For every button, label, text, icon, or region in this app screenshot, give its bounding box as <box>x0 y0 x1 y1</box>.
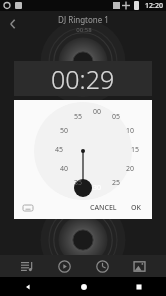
staticText: 05 <box>102 112 130 122</box>
staticText: 55 <box>64 112 92 122</box>
button[interactable]: Play <box>53 255 75 277</box>
staticText: DJ Ringtone 1 <box>58 14 109 25</box>
staticText: 35 <box>64 178 92 188</box>
staticText: 30 <box>83 183 111 193</box>
staticText: OK <box>131 203 141 213</box>
button[interactable]: Home <box>56 277 111 296</box>
staticText: 50 <box>50 126 78 136</box>
button[interactable]: Timer <box>91 255 113 277</box>
button[interactable]: CANCEL <box>85 200 122 216</box>
staticText: 00 <box>83 107 111 117</box>
staticText: 45 <box>45 145 73 155</box>
button[interactable]: Back <box>0 277 56 296</box>
button[interactable]: Image <box>128 255 150 277</box>
staticText: 40 <box>50 164 78 174</box>
button[interactable]: OK <box>126 200 146 216</box>
staticText: 15 <box>121 145 149 155</box>
button[interactable]: Back <box>0 11 26 37</box>
staticText: 12:20 <box>145 1 163 11</box>
staticText: 00:29 <box>51 62 115 96</box>
button[interactable]: Playlist <box>16 255 38 277</box>
staticText: CANCEL <box>90 203 117 213</box>
button[interactable]: Recents <box>111 277 166 296</box>
staticText: 00:58 <box>76 26 92 34</box>
button[interactable]: Keyboard input <box>20 200 36 216</box>
staticText: 20 <box>116 164 144 174</box>
staticText: 10 <box>116 126 144 136</box>
staticText: 25 <box>102 178 130 188</box>
